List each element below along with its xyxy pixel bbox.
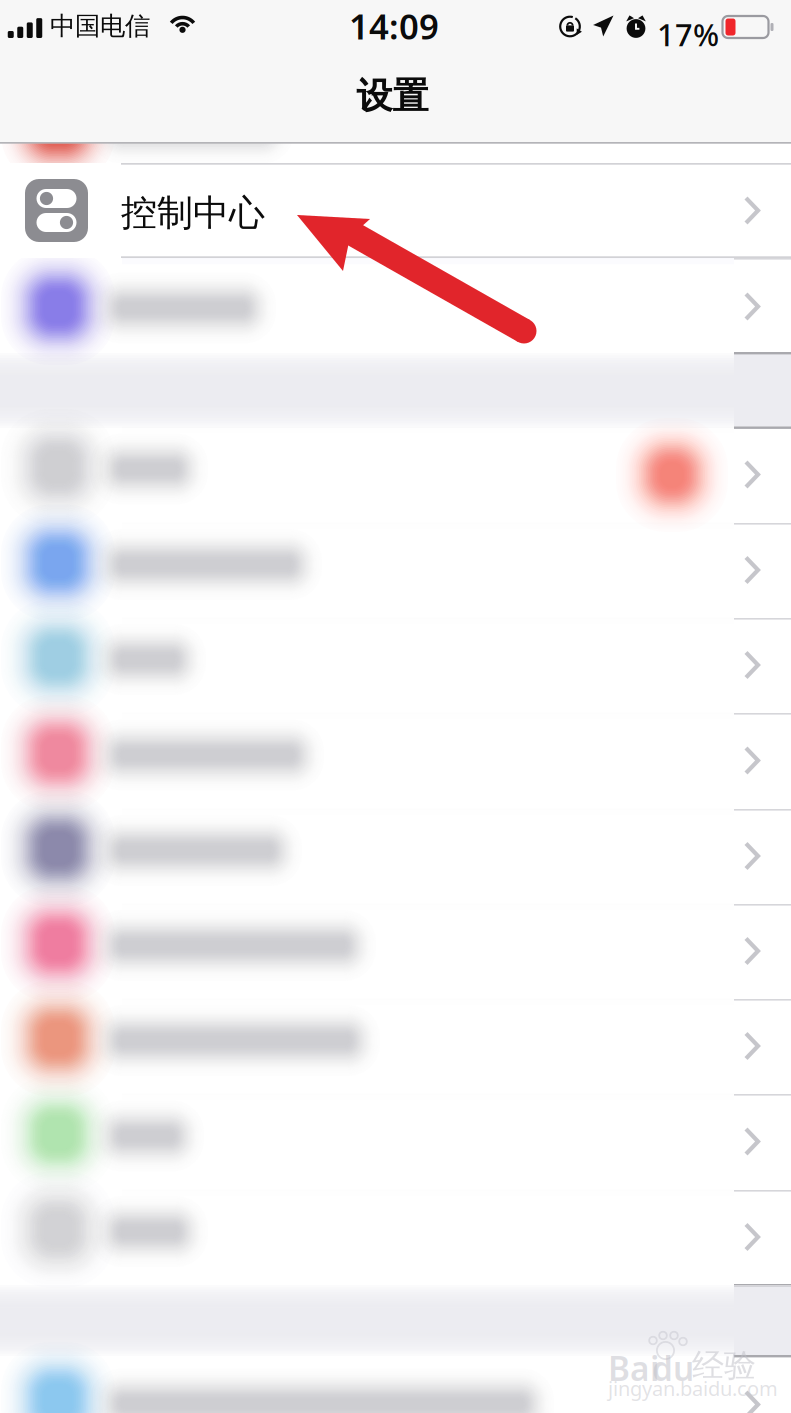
button[interactable]	[0, 0, 791, 1413]
button[interactable]	[0, 0, 791, 1413]
button[interactable]	[0, 0, 791, 1413]
staticText: 经验	[692, 1346, 756, 1385]
staticText: 设置	[356, 74, 428, 118]
button[interactable]: 控制中心	[0, 163, 791, 258]
staticText: 控制中心	[121, 191, 265, 235]
staticText: 17%	[657, 14, 719, 55]
staticText: du	[652, 1346, 694, 1390]
button[interactable]	[0, 0, 791, 1413]
staticText: 14:09	[349, 3, 439, 49]
button[interactable]	[0, 0, 791, 1413]
staticText: 中国电信	[50, 10, 150, 41]
button[interactable]	[0, 0, 791, 1413]
button[interactable]	[0, 0, 791, 1413]
button[interactable]	[0, 0, 791, 1413]
staticText: jingyan.baidu.com	[608, 1375, 778, 1402]
button[interactable]	[0, 0, 791, 1413]
staticText: Bai	[608, 1346, 659, 1390]
